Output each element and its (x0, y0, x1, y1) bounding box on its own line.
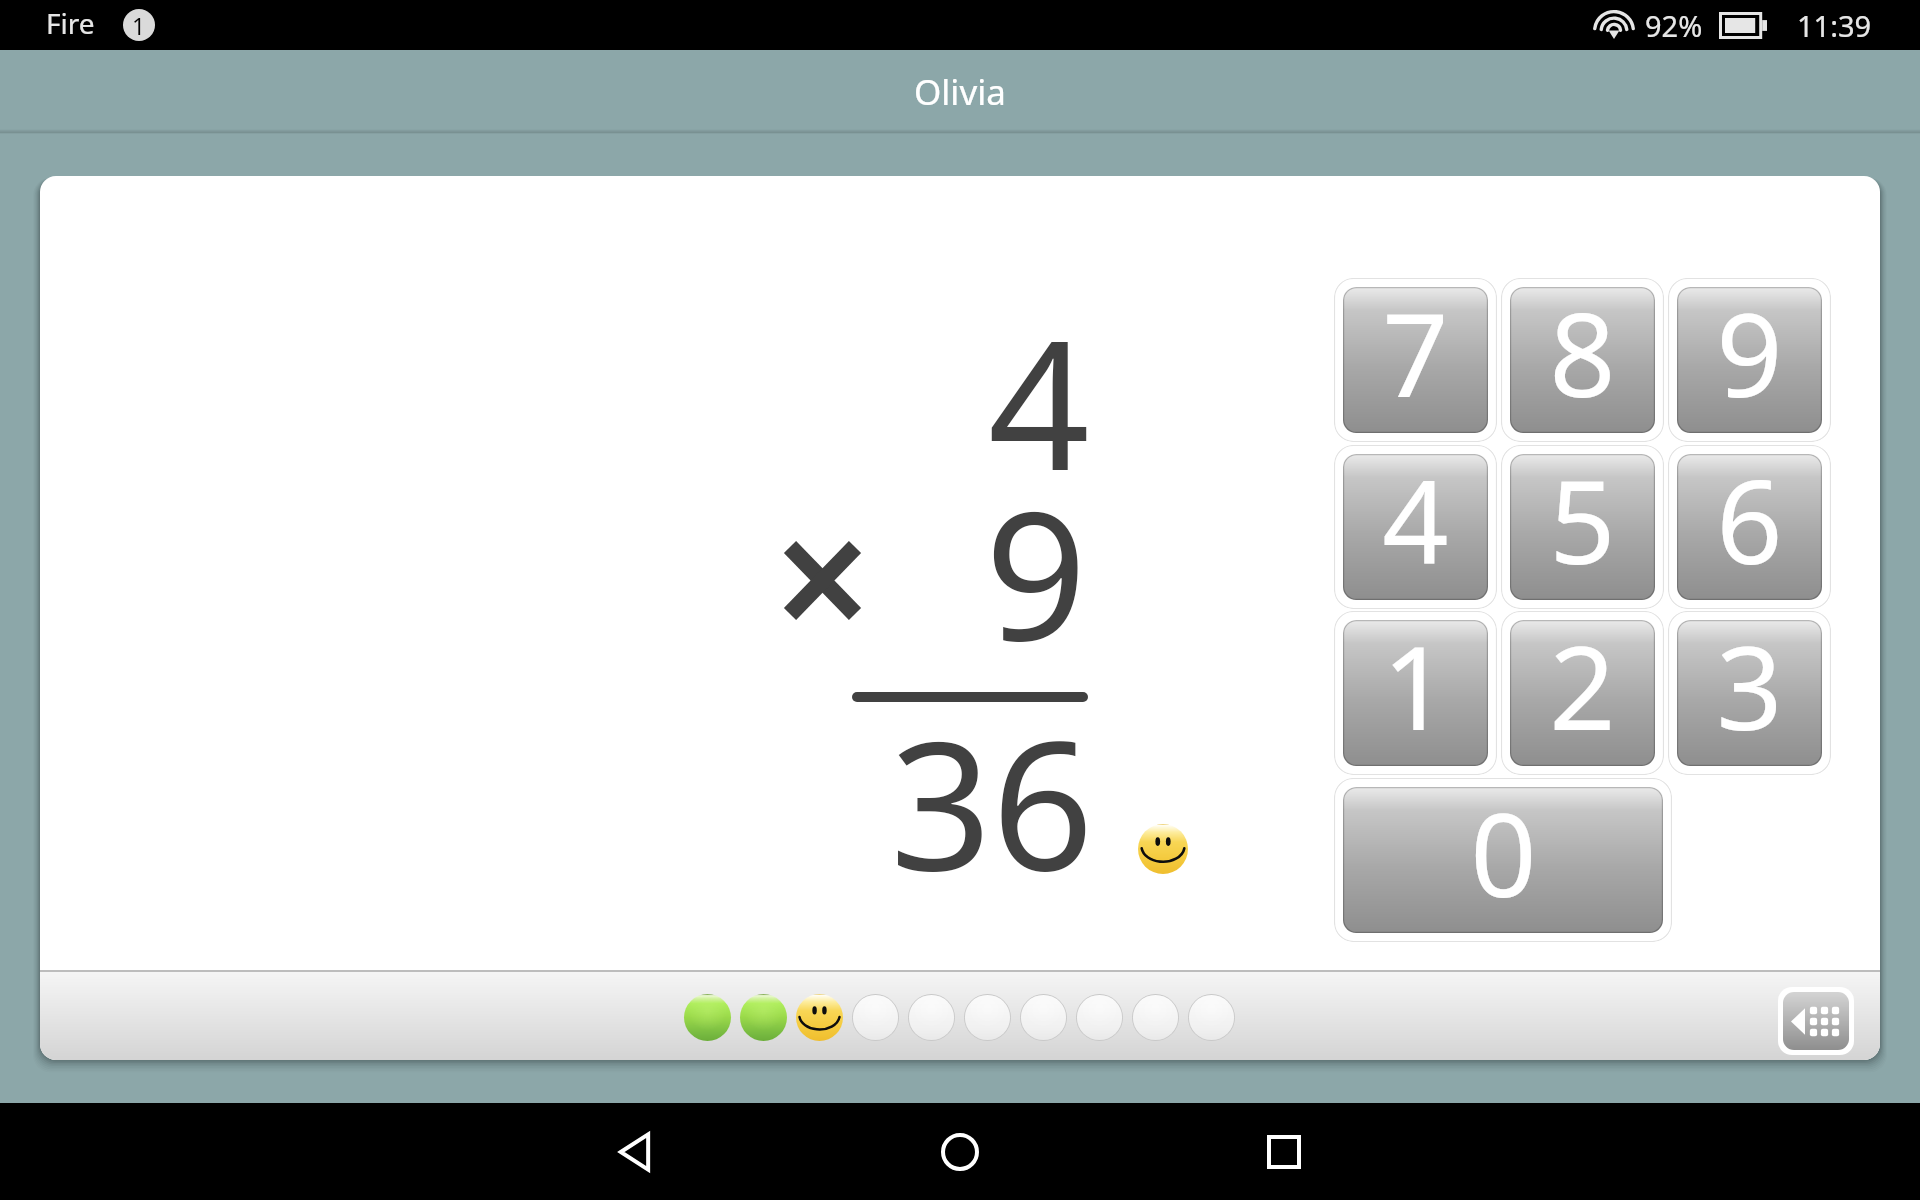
staticText: 4 (1382, 454, 1449, 586)
button[interactable]: 2 (1501, 611, 1664, 775)
button[interactable]: 6 (1668, 445, 1831, 609)
staticText: 0 (1470, 787, 1537, 919)
button[interactable]: 5 (1501, 445, 1664, 609)
button[interactable]: 0 (1334, 778, 1672, 942)
button[interactable]: Hide keyboard (1778, 987, 1854, 1055)
staticText: 8 (1549, 287, 1616, 419)
button[interactable]: 3 (1668, 611, 1831, 775)
staticText: 6 (1716, 454, 1783, 586)
button[interactable]: 1 (1334, 611, 1497, 775)
staticText: 3 (1716, 620, 1783, 752)
staticText: 36 (890, 680, 1094, 922)
button[interactable]: 4 (1334, 445, 1497, 609)
staticText: 7 (1382, 287, 1449, 419)
button[interactable]: 7 (1334, 278, 1497, 442)
staticText: 1 (1382, 620, 1449, 752)
staticText: Olivia (914, 68, 1006, 116)
staticText: 9 (985, 450, 1087, 692)
button[interactable]: Back (596, 1112, 676, 1192)
staticText: 1 (132, 10, 146, 41)
staticText: 11:39 (1797, 6, 1872, 45)
staticText: 5 (1549, 454, 1616, 586)
button[interactable]: 8 (1501, 278, 1664, 442)
button[interactable]: Recent apps (1244, 1112, 1324, 1192)
button[interactable]: 9 (1668, 278, 1831, 442)
staticText: Fire (46, 4, 95, 42)
button[interactable]: Home (920, 1112, 1000, 1192)
staticText: 4 (988, 280, 1090, 522)
staticText: 92% (1645, 6, 1703, 45)
staticText: 9 (1716, 287, 1783, 419)
staticText: 2 (1549, 620, 1616, 752)
